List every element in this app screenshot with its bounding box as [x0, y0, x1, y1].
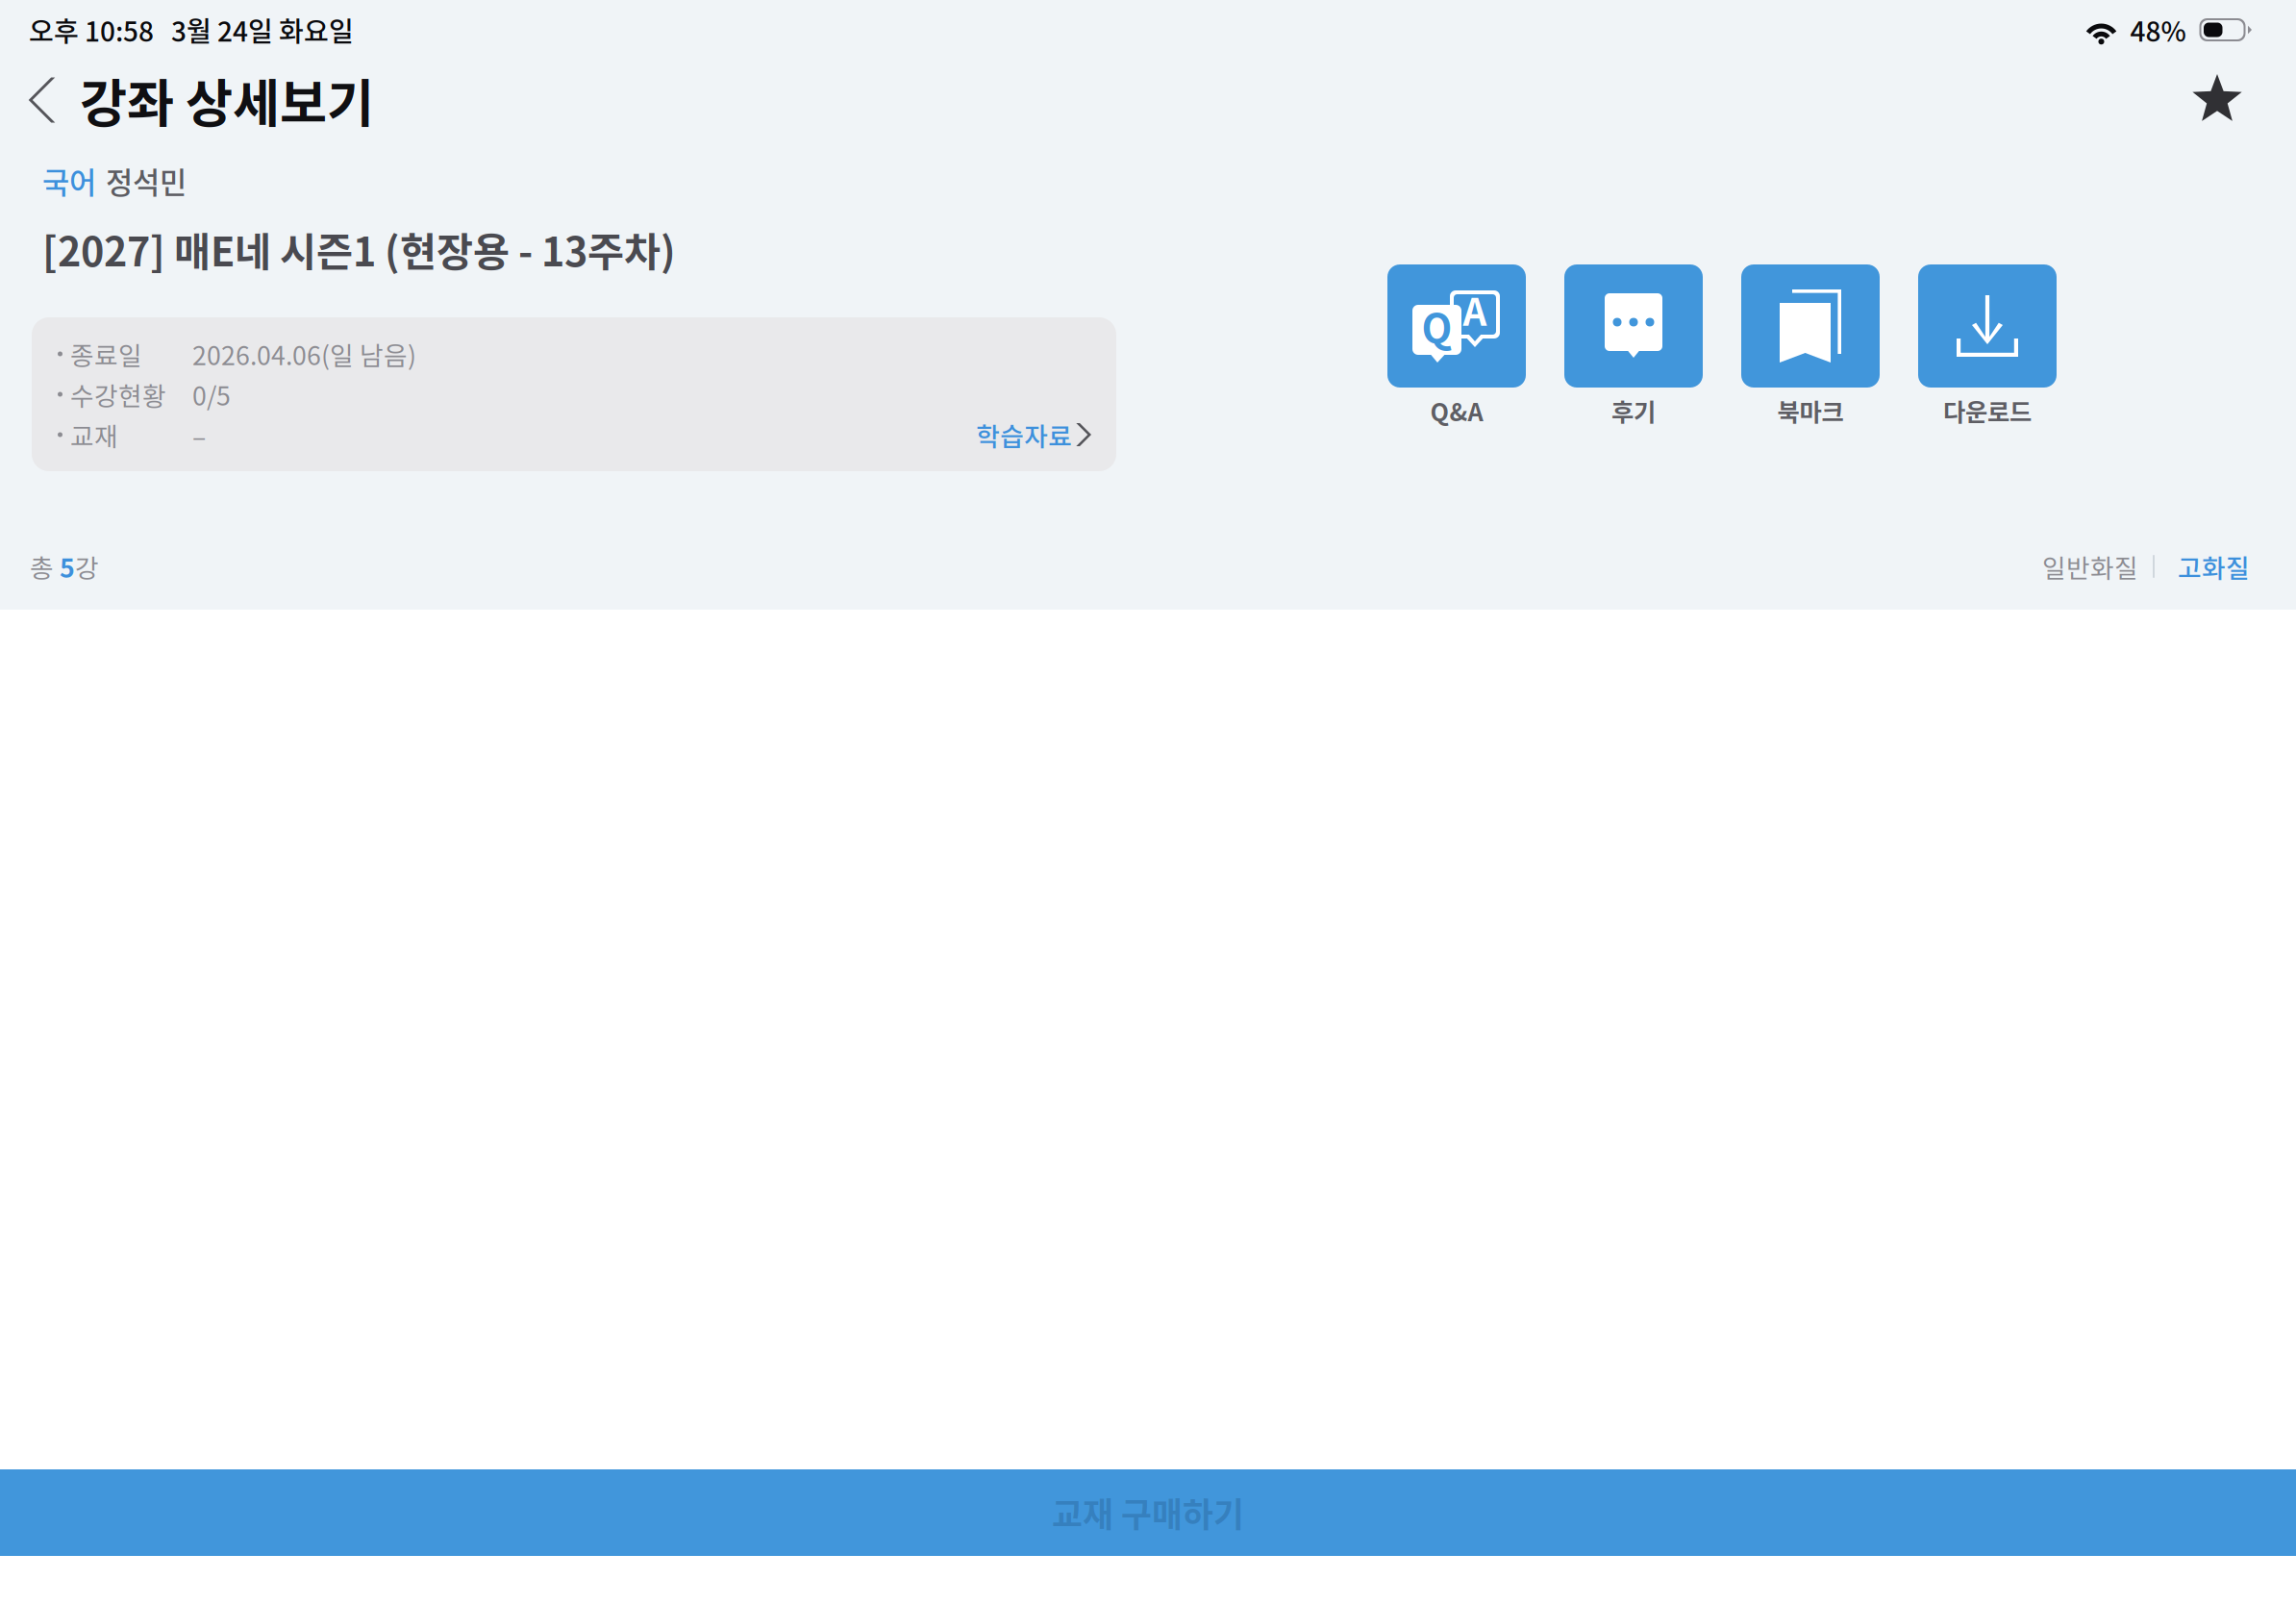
- button[interactable]: A: [1387, 264, 1526, 426]
- button[interactable]: 학습자료: [976, 414, 1091, 455]
- button[interactable]: 북마크: [1741, 264, 1880, 426]
- staticText: 정석민: [106, 159, 187, 202]
- staticText: 5: [60, 548, 75, 585]
- button[interactable]: 다운로드: [1918, 264, 2057, 426]
- button[interactable]: 일반화질: [2042, 542, 2138, 590]
- staticText: 북마크: [1777, 393, 1844, 428]
- staticText: Q: [1422, 297, 1452, 355]
- button[interactable]: 교재 구매하기: [0, 1469, 2296, 1556]
- staticText: A: [1463, 283, 1487, 337]
- staticText: 48%: [2119, 10, 2186, 49]
- button[interactable]: 뒤로: [4, 60, 80, 140]
- staticText: 0/5: [192, 376, 231, 413]
- button[interactable]: 고화질: [2178, 542, 2250, 590]
- staticText: 강: [75, 548, 99, 585]
- staticText: 2026.04.06(일 남음): [192, 335, 416, 372]
- staticText: 학습자료: [976, 416, 1072, 453]
- staticText: 총: [30, 548, 60, 585]
- staticText: 교재: [70, 416, 118, 453]
- staticText: 교재 구매하기: [1052, 1489, 1244, 1537]
- staticText: 후기: [1611, 393, 1656, 428]
- staticText: 고화질: [2178, 548, 2250, 585]
- staticText: –: [192, 416, 206, 453]
- staticText: 3월 24일 화요일: [154, 10, 354, 49]
- staticText: [2027] 매E네 시즌1 (현장용 - 13주차): [42, 220, 676, 278]
- staticText: 일반화질: [2042, 548, 2138, 585]
- staticText: Q&A: [1430, 393, 1483, 428]
- button[interactable]: 즐겨찾기: [2176, 60, 2259, 140]
- staticText: 국어: [42, 159, 96, 202]
- button[interactable]: 후기: [1564, 264, 1703, 426]
- staticText: 수강현황: [70, 376, 166, 413]
- staticText: 오후 10:58: [29, 10, 154, 49]
- staticText: 강좌 상세보기: [80, 63, 374, 137]
- staticText: 종료일: [70, 335, 142, 372]
- staticText: 다운로드: [1943, 393, 2032, 428]
